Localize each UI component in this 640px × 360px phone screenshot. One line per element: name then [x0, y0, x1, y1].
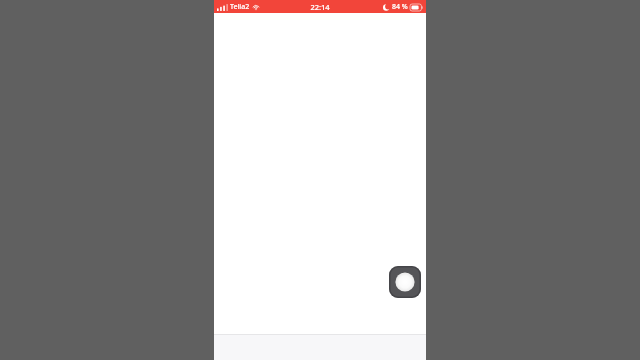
button[interactable]: Record	[389, 266, 421, 298]
staticText: 22:14	[310, 2, 330, 12]
staticText: Telia2	[230, 2, 250, 12]
staticText: 84 %	[392, 2, 408, 12]
